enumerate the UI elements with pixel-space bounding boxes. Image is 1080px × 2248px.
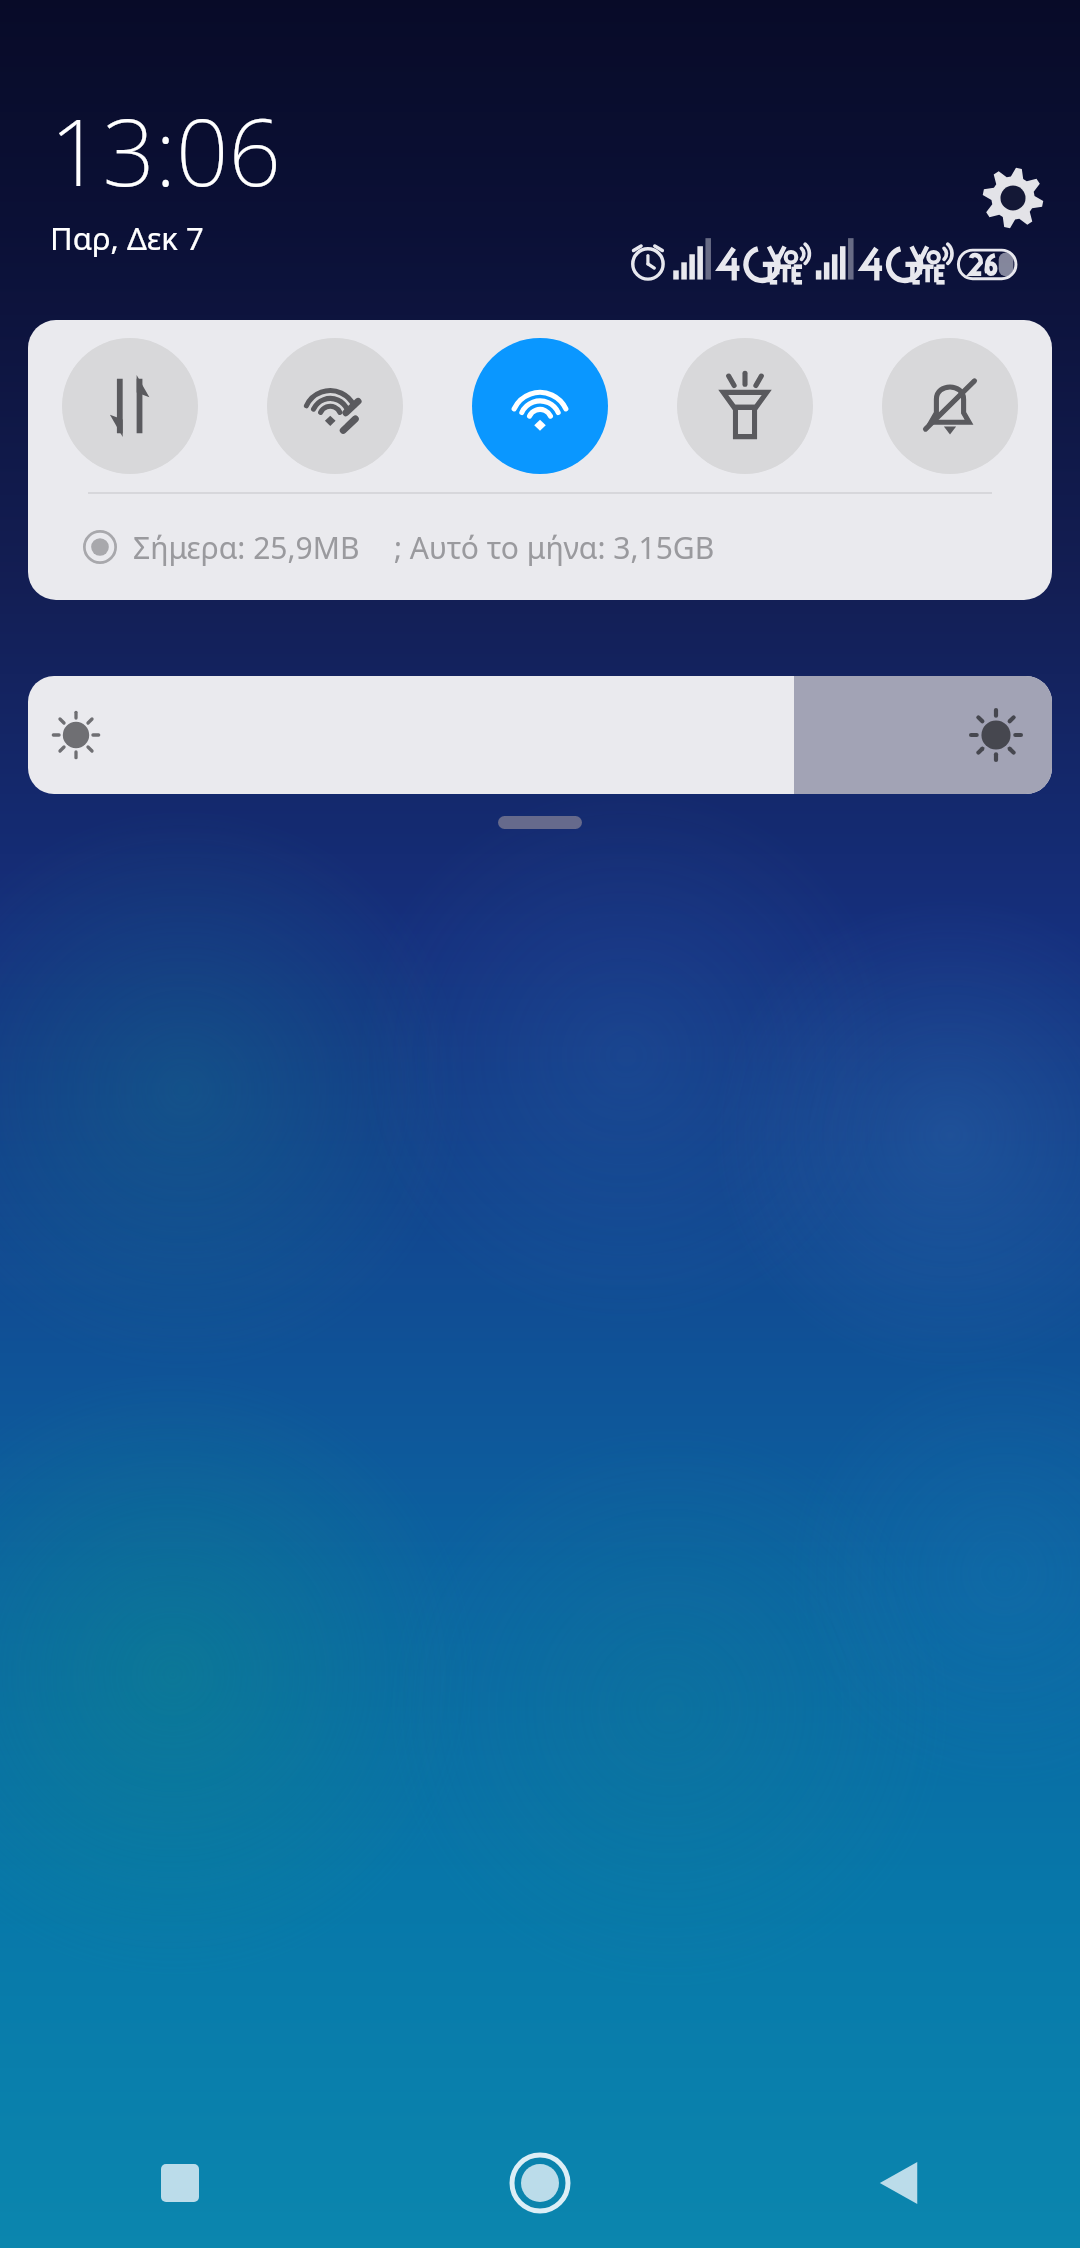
button[interactable]: Brightness: [28, 676, 1052, 794]
button[interactable]: Silent mode: [882, 338, 1018, 474]
button[interactable]: Mobile data: [62, 338, 198, 474]
staticText: Σήμερα: 25,9MB: [133, 527, 360, 568]
button[interactable]: Flashlight: [677, 338, 813, 474]
button[interactable]: Recents: [0, 2118, 360, 2248]
staticText: Παρ, Δεκ 7: [50, 217, 204, 259]
button[interactable]: Expand: [498, 816, 582, 829]
button[interactable]: Home: [360, 2118, 720, 2248]
staticText: 13:06: [50, 88, 281, 213]
staticText: ; Αυτό το μήνα: 3,15GB: [394, 527, 715, 568]
button[interactable]: Wi-Fi: [472, 338, 608, 474]
button[interactable]: Σήμερα: 25,9MB: [28, 494, 1052, 600]
button[interactable]: Back: [720, 2118, 1080, 2248]
button[interactable]: Hotspot: [267, 338, 403, 474]
button[interactable]: Settings: [975, 160, 1051, 236]
